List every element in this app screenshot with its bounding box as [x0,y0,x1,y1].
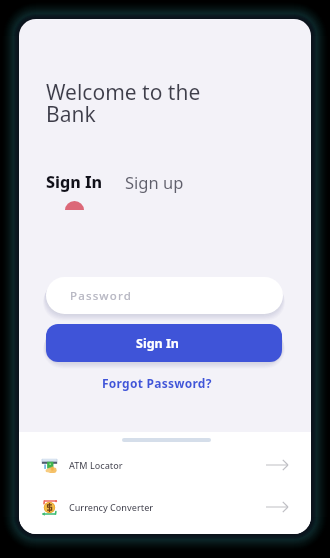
staticText: ATM Locator [69,459,123,471]
button[interactable]: Password [46,277,283,314]
staticText: Currency Converter [69,501,154,513]
staticText: Welcome to the [46,78,201,107]
other: Open Currency Converter [266,500,288,514]
staticText: Bank [46,100,96,129]
button[interactable]: ATM Locator [19,444,311,486]
staticText: Password [70,288,133,304]
other: Open ATM Locator [266,458,288,472]
staticText: Sign In [46,171,103,193]
button[interactable]: Sign up [125,171,184,193]
button[interactable]: Sign In [46,324,282,362]
button[interactable]: Forgot Password? [102,375,212,391]
staticText: Sign In [136,335,179,352]
button[interactable]: Currency Converter [19,486,311,528]
button[interactable]: Sign In [46,171,103,210]
